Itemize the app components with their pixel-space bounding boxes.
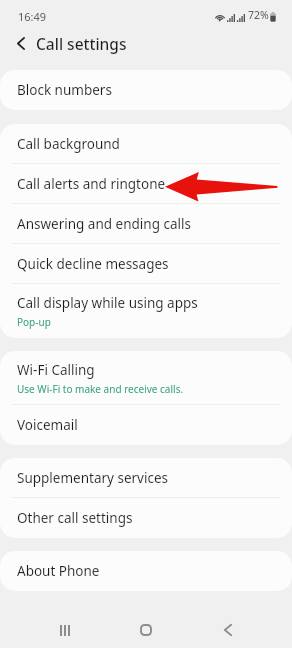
staticText: Call alerts and ringtone	[17, 175, 166, 193]
staticText: Other call settings	[17, 509, 133, 527]
button[interactable]: Supplementary services	[0, 458, 292, 498]
button[interactable]: Wi-Fi Calling	[0, 351, 292, 405]
button[interactable]: Quick decline messages	[0, 244, 292, 284]
staticText: 16:49	[18, 9, 47, 24]
staticText: Call settings	[36, 33, 127, 54]
button[interactable]: Home	[126, 612, 166, 648]
staticText: Wi-Fi Calling	[17, 361, 95, 379]
button[interactable]: Other call settings	[0, 498, 292, 538]
staticText: Call background	[17, 135, 120, 153]
button[interactable]: Call display while using apps	[0, 284, 292, 338]
button[interactable]: Recent apps	[45, 612, 85, 648]
button[interactable]: Block numbers	[0, 70, 292, 110]
staticText: 72%	[248, 8, 269, 22]
staticText: Quick decline messages	[17, 255, 169, 273]
staticText: Use Wi-Fi to make and receive calls.	[17, 382, 184, 396]
staticText: About Phone	[17, 562, 100, 580]
staticText: Voicemail	[17, 416, 78, 434]
button[interactable]: Call background	[0, 124, 292, 164]
staticText: Answering and ending calls	[17, 215, 191, 233]
staticText: Supplementary services	[17, 469, 169, 487]
button[interactable]: Answering and ending calls	[0, 204, 292, 244]
button[interactable]: Navigate up	[8, 29, 34, 58]
button[interactable]: Back	[208, 612, 248, 648]
staticText: Pop-up	[17, 315, 51, 329]
button[interactable]: About Phone	[0, 551, 292, 591]
button[interactable]: Voicemail	[0, 405, 292, 445]
staticText: Block numbers	[17, 81, 112, 99]
button[interactable]: Call alerts and ringtone	[0, 164, 292, 204]
staticText: Call display while using apps	[17, 294, 198, 312]
